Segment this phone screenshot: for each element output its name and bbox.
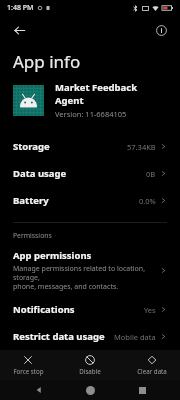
button[interactable]: Recent apps (129, 380, 155, 400)
button[interactable]: Notifications (0, 296, 180, 323)
staticText: Mobile data (114, 332, 156, 342)
staticText: Data usage (13, 167, 67, 180)
button[interactable]: Clear data (130, 353, 174, 377)
button[interactable]: App info help (150, 19, 172, 41)
staticText: Version: 11-6684105 (55, 109, 127, 119)
button[interactable]: Back (8, 19, 30, 41)
staticText: Permissions (13, 231, 52, 240)
button[interactable]: Restrict data usage (0, 323, 180, 350)
staticText: Restrict data usage (13, 330, 105, 343)
staticText: Disable (79, 367, 101, 375)
button[interactable]: Disable (68, 353, 112, 377)
staticText: Yes (144, 305, 156, 315)
staticText: 0.0% (139, 196, 156, 206)
button[interactable]: Battery (0, 187, 180, 214)
button[interactable]: Data usage (0, 160, 180, 187)
staticText: Manage permissions related to location, … (13, 264, 154, 291)
staticText: 57.34KB (127, 142, 156, 152)
staticText: App info (13, 50, 81, 73)
staticText: Clear data (137, 367, 167, 375)
staticText: Market Feedback Agent (55, 81, 167, 107)
staticText: 0B (146, 169, 156, 179)
staticText: Notifications (13, 303, 75, 316)
staticText: Force stop (13, 367, 44, 375)
staticText: Storage (13, 140, 50, 153)
button[interactable]: Storage (0, 133, 180, 160)
button[interactable]: App permissions (0, 244, 180, 296)
button[interactable]: Force stop (6, 353, 50, 377)
staticText: Battery (13, 194, 49, 207)
staticText: App permissions (13, 249, 92, 262)
button[interactable]: Back (26, 380, 52, 400)
button[interactable]: Home (77, 380, 103, 400)
staticText: 1:48 PM (7, 3, 34, 13)
